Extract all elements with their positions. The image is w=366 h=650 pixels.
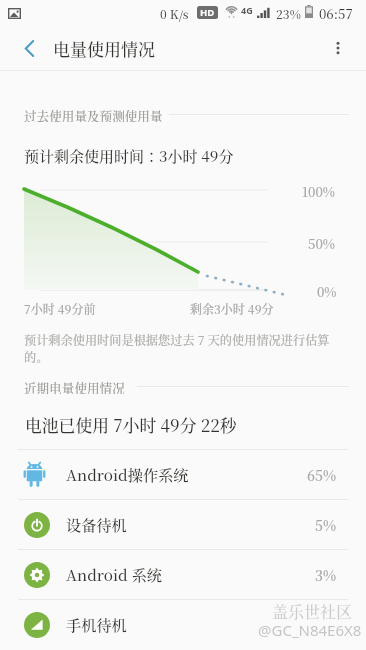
- staticText: 近期电量使用情况: [24, 378, 125, 394]
- staticText: Android操作系统: [66, 464, 189, 486]
- staticText: 4G: [241, 4, 253, 16]
- button[interactable]: 设备待机: [0, 500, 366, 549]
- staticText: 过去使用量及预测使用量: [24, 106, 163, 122]
- staticText: 7小时 49分前: [24, 300, 96, 317]
- staticText: 5%: [315, 515, 337, 535]
- staticText: 电池已使用 7小时 49分 22秒: [25, 413, 237, 437]
- staticText: 设备待机: [66, 514, 127, 536]
- staticText: 手机待机: [66, 614, 127, 636]
- staticText: 盖乐世社区: [272, 600, 353, 623]
- staticText: 电量使用情况: [53, 36, 155, 60]
- button[interactable]: Android 系统: [0, 550, 366, 599]
- button[interactable]: Back: [8, 26, 52, 70]
- staticText: 65%: [307, 465, 337, 485]
- staticText: 100%: [302, 182, 336, 201]
- staticText: HD: [200, 6, 215, 19]
- staticText: Android 系统: [66, 564, 163, 586]
- staticText: 0 K/s: [160, 5, 189, 22]
- staticText: 0%: [317, 282, 337, 301]
- button[interactable]: More options: [316, 26, 360, 70]
- staticText: 剩余3小时 49分: [190, 300, 274, 317]
- staticText: 23%: [276, 5, 301, 22]
- staticText: 3%: [315, 565, 337, 585]
- button[interactable]: 手机待机: [0, 600, 366, 649]
- staticText: 预计剩余使用时间：3小时 49分: [24, 145, 234, 167]
- button[interactable]: Android操作系统: [0, 450, 366, 499]
- staticText: 预计剩余使用时间是根据您过去 7 天的使用情况进行估算的。: [24, 331, 336, 365]
- staticText: 06:57: [319, 4, 353, 23]
- staticText: @GC_N84E6X8: [258, 620, 362, 640]
- staticText: 50%: [308, 234, 335, 253]
